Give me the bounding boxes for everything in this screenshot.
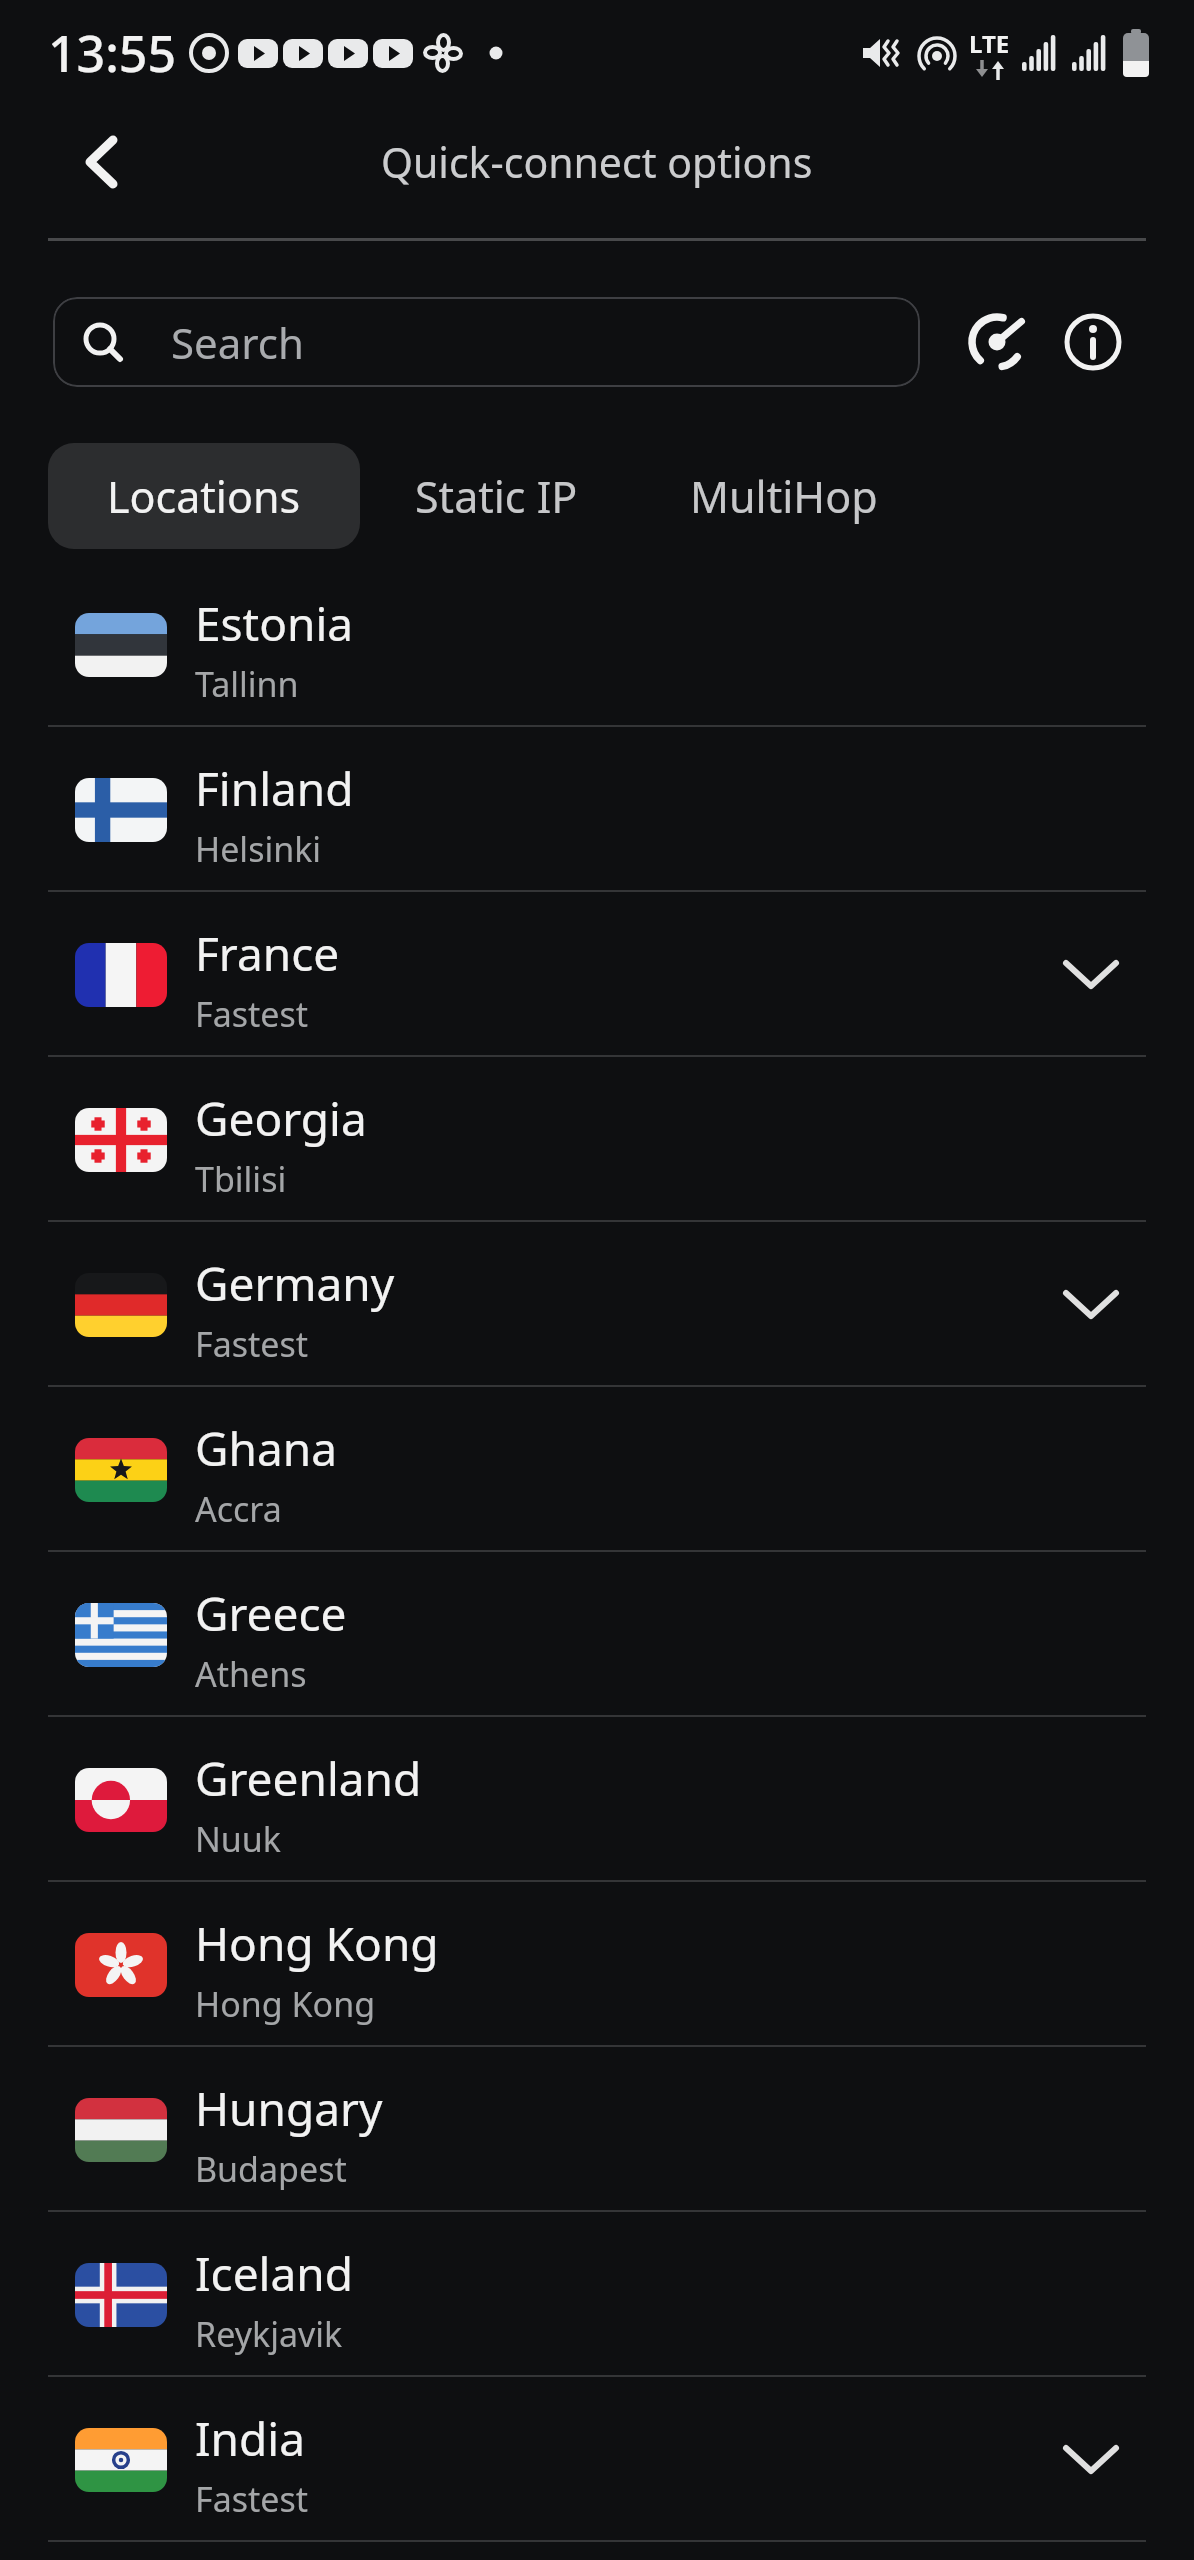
staticText: Hungary (195, 2077, 383, 2140)
staticText: India (195, 2407, 305, 2470)
staticText: Greenland (195, 1747, 422, 1810)
button[interactable]: Germany (0, 1222, 1194, 1387)
staticText: Greece (195, 1582, 347, 1645)
button[interactable]: Greece (0, 1552, 1194, 1717)
staticText: Locations (107, 467, 301, 526)
staticText: Nuuk (195, 1816, 282, 1862)
staticText: Germany (195, 1252, 395, 1315)
staticText: Tallinn (195, 661, 299, 707)
button[interactable] (1065, 314, 1121, 370)
staticText: Budapest (195, 2146, 347, 2192)
button[interactable]: Iceland (0, 2212, 1194, 2377)
button[interactable] (969, 314, 1025, 370)
button[interactable]: Hong Kong (0, 1882, 1194, 2047)
staticText: Helsinki (195, 826, 322, 872)
staticText: Search (171, 314, 304, 371)
staticText: Reykjavik (195, 2311, 343, 2357)
staticText: 13:55 (48, 19, 176, 87)
staticText: Static IP (415, 467, 578, 526)
button[interactable]: India (0, 2377, 1194, 2542)
button[interactable]: Search (53, 297, 920, 387)
staticText: Hong Kong (195, 1912, 439, 1975)
button[interactable]: Locations (48, 443, 360, 549)
button[interactable]: Finland (0, 727, 1194, 892)
staticText: Fastest (195, 1321, 309, 1367)
staticText: LTE (969, 27, 1010, 60)
button[interactable]: France (0, 892, 1194, 1057)
staticText: MultiHop (690, 467, 878, 526)
staticText: Accra (195, 1486, 282, 1532)
staticText: Fastest (195, 991, 309, 1037)
button[interactable]: MultiHop (662, 443, 906, 549)
staticText: Georgia (195, 1087, 367, 1150)
staticText: Iceland (195, 2242, 354, 2305)
staticText: Finland (195, 757, 354, 820)
staticText: Hong Kong (195, 1981, 376, 2027)
staticText: Quick-connect options (381, 134, 813, 190)
staticText: France (195, 922, 340, 985)
staticText: Ghana (195, 1417, 337, 1480)
staticText: Estonia (195, 592, 354, 655)
button[interactable]: Ghana (0, 1387, 1194, 1552)
staticText: Tbilisi (195, 1156, 287, 1202)
button[interactable]: Georgia (0, 1057, 1194, 1222)
button[interactable]: Greenland (0, 1717, 1194, 1882)
button[interactable]: Estonia (0, 562, 1194, 727)
button[interactable]: Static IP (384, 443, 608, 549)
button[interactable]: Hungary (0, 2047, 1194, 2212)
button[interactable] (62, 122, 142, 202)
staticText: Fastest (195, 2476, 309, 2522)
staticText: Athens (195, 1651, 307, 1697)
